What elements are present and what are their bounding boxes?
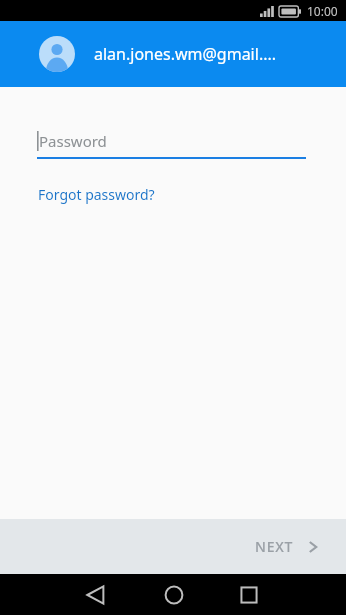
staticText: NEXT (255, 537, 294, 556)
staticText: 10:00 (307, 3, 338, 19)
button[interactable]: alan.jones.wm@gmail.... (0, 36, 346, 72)
button[interactable]: Home (160, 581, 188, 609)
staticText: alan.jones.wm@gmail.... (94, 43, 277, 65)
button[interactable]: NEXT (235, 527, 346, 566)
button[interactable]: Password (0, 131, 346, 159)
button[interactable]: Forgot password? (0, 183, 167, 208)
staticText: Forgot password? (38, 185, 155, 204)
staticText: Password (39, 131, 107, 151)
button[interactable]: Recent apps (235, 581, 263, 609)
button[interactable]: Back (82, 581, 110, 609)
